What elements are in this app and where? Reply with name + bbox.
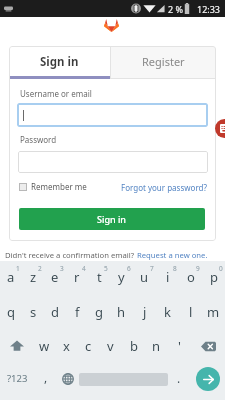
staticText: 9: [196, 264, 200, 273]
button[interactable]: e: [44, 261, 66, 295]
staticText: 0: [219, 264, 223, 273]
button[interactable]: Forgot your password?: [121, 182, 207, 193]
button[interactable]: n: [145, 329, 168, 363]
staticText: q: [7, 303, 15, 321]
staticText: u: [140, 268, 149, 286]
staticText: r: [74, 268, 80, 286]
button[interactable]: Sign in: [19, 208, 205, 230]
button[interactable]: v: [99, 329, 122, 363]
staticText: a: [7, 268, 15, 286]
staticText: Request a new one.: [137, 250, 208, 260]
button[interactable]: Change keyboard language: [57, 363, 79, 400]
staticText: Sign in: [40, 54, 79, 70]
staticText: x: [63, 337, 70, 355]
button[interactable]: ,: [35, 363, 57, 400]
staticText: Username or email: [20, 88, 92, 99]
staticText: 4: [82, 264, 86, 273]
button[interactable]: s: [22, 295, 44, 329]
button[interactable]: [18, 151, 208, 173]
button[interactable]: l: [179, 295, 202, 329]
staticText: Didn't receive a confirmation email?: [5, 250, 137, 260]
staticText: e: [51, 268, 59, 286]
button[interactable]: d: [44, 295, 66, 329]
button[interactable]: j: [133, 295, 156, 329]
button[interactable]: Shift: [0, 329, 33, 363]
staticText: .: [177, 370, 181, 386]
button[interactable]: ?123: [0, 363, 35, 400]
button[interactable]: x: [55, 329, 77, 363]
staticText: ': [178, 337, 181, 355]
staticText: i: [166, 268, 170, 286]
staticText: 5: [104, 264, 108, 273]
button[interactable]: r: [66, 261, 88, 295]
button[interactable]: p: [202, 261, 225, 295]
staticText: Password: [20, 134, 57, 145]
staticText: 3: [60, 264, 64, 273]
button[interactable]: a: [0, 261, 22, 295]
staticText: Sign in: [97, 213, 127, 225]
button[interactable]: [17, 103, 208, 127]
staticText: p: [210, 268, 218, 286]
staticText: f: [75, 303, 80, 321]
staticText: 12:33: [197, 3, 221, 15]
staticText: 2 %: [168, 3, 183, 15]
button[interactable]: w: [33, 329, 55, 363]
button[interactable]: .: [168, 363, 190, 400]
button[interactable]: o: [179, 261, 202, 295]
button[interactable]: c: [77, 329, 99, 363]
staticText: w: [39, 337, 50, 355]
button[interactable]: Fill password: [215, 119, 225, 138]
staticText: s: [30, 303, 37, 321]
button[interactable]: t: [88, 261, 110, 295]
button[interactable]: Backspace: [191, 329, 225, 363]
staticText: Forgot your password?: [121, 182, 207, 193]
button[interactable]: Request a new one.: [137, 250, 208, 260]
button[interactable]: u: [133, 261, 156, 295]
staticText: y: [118, 268, 125, 286]
staticText: 8: [173, 264, 177, 273]
button[interactable]: ': [168, 329, 191, 363]
staticText: b: [130, 337, 138, 355]
staticText: 7: [150, 264, 154, 273]
staticText: m: [207, 303, 220, 321]
staticText: Remember me: [31, 181, 87, 192]
button[interactable]: q: [0, 295, 22, 329]
staticText: 6: [127, 264, 131, 273]
staticText: h: [117, 303, 126, 321]
staticText: 1: [16, 264, 20, 273]
button[interactable]: Register: [111, 46, 216, 79]
button[interactable]: b: [122, 329, 145, 363]
staticText: t: [97, 268, 102, 286]
staticText: d: [51, 303, 59, 321]
staticText: v: [107, 337, 114, 355]
button[interactable]: k: [156, 295, 179, 329]
staticText: l: [189, 303, 193, 321]
staticText: k: [164, 303, 171, 321]
staticText: z: [30, 268, 37, 286]
button[interactable]: Enter: [196, 367, 220, 391]
button[interactable]: Sign in: [9, 46, 110, 79]
staticText: ?123: [7, 372, 28, 385]
button[interactable]: g: [88, 295, 110, 329]
staticText: Register: [142, 54, 185, 69]
button[interactable]: i: [156, 261, 179, 295]
staticText: 2: [38, 264, 42, 273]
button[interactable]: f: [66, 295, 88, 329]
staticText: ,: [44, 369, 48, 385]
staticText: c: [85, 337, 92, 355]
button[interactable]: m: [202, 295, 225, 329]
button[interactable]: h: [110, 295, 133, 329]
staticText: g: [95, 303, 103, 321]
button[interactable]: Remember me: [19, 181, 87, 192]
staticText: n: [152, 337, 161, 355]
button[interactable]: y: [110, 261, 133, 295]
staticText: j: [143, 303, 147, 321]
button[interactable]: z: [22, 261, 44, 295]
staticText: o: [187, 268, 195, 286]
